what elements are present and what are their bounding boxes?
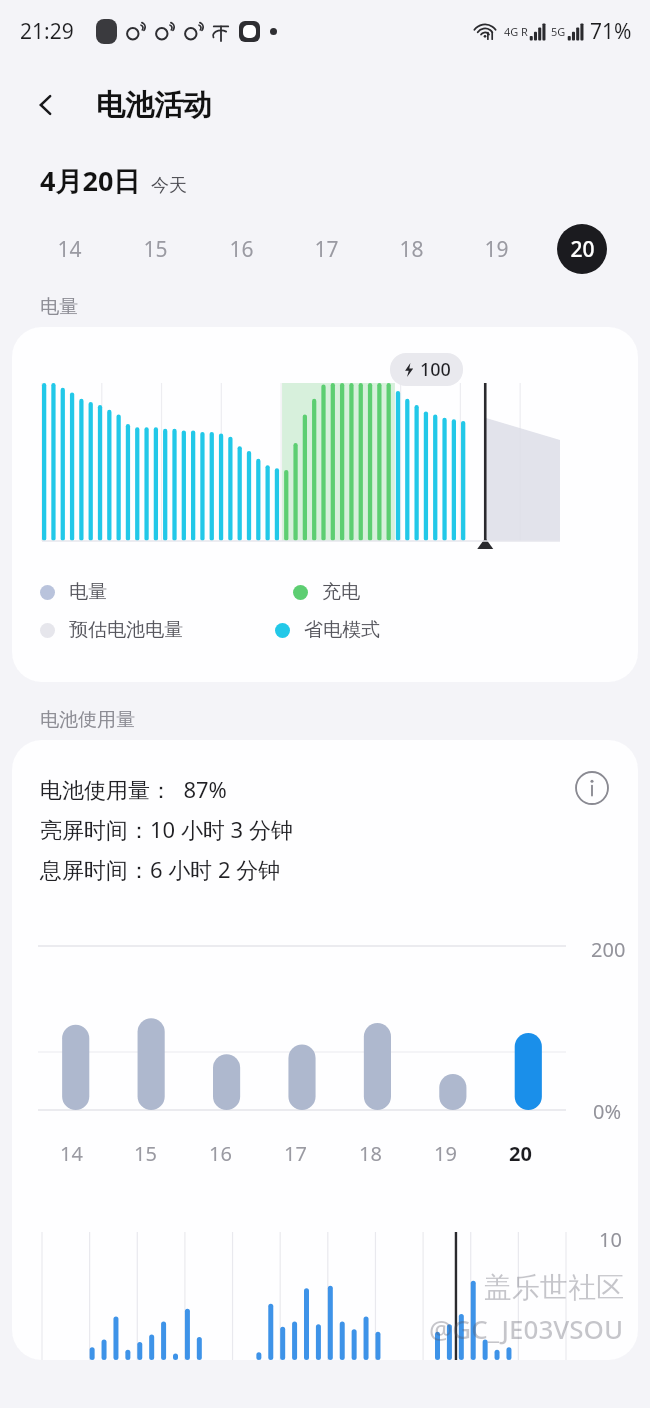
staticText: 71%	[590, 17, 632, 46]
button[interactable]: 19	[454, 221, 539, 277]
staticText: 息屏时间：6 小时 2 分钟	[40, 854, 281, 884]
staticText: R	[521, 24, 528, 39]
button[interactable]: 电量	[40, 580, 107, 604]
staticText: 盖乐世社区	[484, 1270, 624, 1305]
button[interactable]: 省电模式	[275, 618, 380, 642]
staticText: 16	[209, 1140, 232, 1167]
staticText: 19	[484, 235, 509, 264]
staticText: 17	[284, 1140, 307, 1167]
staticText: 100	[420, 357, 451, 382]
staticText: 4G	[504, 24, 519, 39]
staticText: 4月20日	[40, 162, 141, 199]
button[interactable]: 15	[112, 221, 198, 277]
staticText: 10	[599, 1226, 622, 1253]
button[interactable]: 返回	[22, 81, 70, 129]
staticText: 14	[60, 1140, 83, 1167]
button[interactable]: 100	[12, 327, 638, 682]
staticText: 电池活动	[96, 87, 212, 124]
staticText: 省电模式	[304, 618, 380, 642]
button[interactable]: 14	[26, 221, 112, 277]
staticText: 今天	[151, 174, 187, 197]
button[interactable]: 16	[198, 221, 284, 277]
staticText: 20	[570, 235, 595, 264]
staticText: @GC_JE03VSOU	[429, 1311, 624, 1346]
staticText: 0%	[593, 1098, 622, 1125]
button[interactable]: 20	[539, 221, 624, 277]
staticText: 电池使用量： 87%	[40, 774, 227, 804]
staticText: 16	[229, 235, 254, 264]
staticText: 20	[509, 1140, 532, 1167]
staticText: 200	[591, 936, 626, 963]
staticText: 21:29	[20, 17, 74, 46]
staticText: 19	[434, 1140, 457, 1167]
staticText: 充电	[322, 580, 360, 604]
button[interactable]: 17	[284, 221, 369, 277]
staticText: 18	[359, 1140, 382, 1167]
staticText: 电池使用量	[40, 708, 135, 732]
button[interactable]: 18	[369, 221, 454, 277]
staticText: 15	[143, 235, 168, 264]
staticText: 电量	[40, 295, 78, 319]
staticText: 预估电池电量	[69, 618, 183, 642]
staticText: 电量	[69, 580, 107, 604]
button[interactable]: 信息	[570, 766, 614, 810]
staticText: 亮屏时间：10 小时 3 分钟	[40, 814, 293, 844]
button[interactable]: 预估电池电量	[40, 618, 183, 642]
button[interactable]: 电池使用量： 87%	[12, 740, 638, 1360]
staticText: 15	[134, 1140, 157, 1167]
staticText: 17	[314, 235, 339, 264]
button[interactable]: 充电	[293, 580, 360, 604]
staticText: 18	[399, 235, 424, 264]
staticText: 5G	[551, 24, 566, 39]
staticText: 14	[57, 235, 82, 264]
